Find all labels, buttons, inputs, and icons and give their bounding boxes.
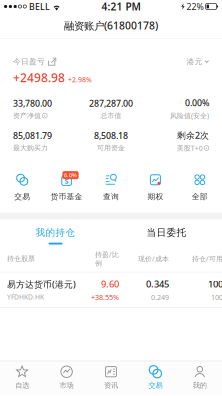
staticText: BELL xyxy=(29,0,50,12)
staticText: 33,780.00 xyxy=(13,97,52,109)
staticText: 持仓股票 xyxy=(7,254,35,263)
staticText: 8,508.18 xyxy=(94,130,128,142)
staticText: YFDHKD.HK xyxy=(7,292,44,301)
button[interactable]: 全部 xyxy=(178,174,222,201)
button[interactable]: 自选 xyxy=(0,365,44,390)
button[interactable]: 港元 xyxy=(187,55,209,68)
staticText: 剩余2次 xyxy=(177,129,209,141)
staticText: 0.00% xyxy=(185,97,209,109)
staticText: 交易 xyxy=(14,192,30,201)
staticText: 货币基金 xyxy=(51,192,83,201)
staticText: 资产净值 xyxy=(13,111,41,120)
staticText: 风险值(安全) xyxy=(170,111,209,120)
staticText: 资讯 xyxy=(104,381,118,390)
button[interactable]: 期权 xyxy=(133,174,178,201)
staticText: 85,081.79 xyxy=(13,130,52,142)
staticText: 全部 xyxy=(192,192,208,201)
staticText: 融资账户(61800178) xyxy=(64,18,158,33)
button[interactable]: 交易 xyxy=(0,174,44,201)
staticText: 现价/成本 xyxy=(138,254,169,263)
staticText: 我的持仓 xyxy=(35,226,75,239)
staticText: 港元 xyxy=(187,57,203,66)
staticText: 22% xyxy=(187,0,204,12)
staticText: 最大购买力 xyxy=(13,144,48,152)
staticText: +2.98% xyxy=(68,75,92,84)
button[interactable]: 资讯 xyxy=(89,365,133,390)
staticText: 我的 xyxy=(193,381,207,390)
button[interactable]: S xyxy=(44,174,89,201)
staticText: S xyxy=(65,176,69,186)
staticText: 0.249 xyxy=(151,292,169,302)
button[interactable]: 易方达货币(港元) xyxy=(0,273,222,307)
button[interactable]: 我的持仓 xyxy=(0,219,111,250)
staticText: 4:21 PM xyxy=(101,0,140,13)
staticText: 100 xyxy=(208,278,222,290)
staticText: 6.0% xyxy=(64,171,77,179)
staticText: 期权 xyxy=(147,192,163,201)
staticText: 今日盈亏 xyxy=(13,57,45,66)
button[interactable]: 市场 xyxy=(44,365,89,390)
staticText: 287,287.00 xyxy=(89,97,133,109)
staticText: 9.60 xyxy=(101,278,119,290)
staticText: 可用资金 xyxy=(97,144,125,152)
staticText: 美股T+0 xyxy=(177,143,203,153)
staticText: 总市值 xyxy=(100,111,121,120)
staticText: 100 xyxy=(211,292,222,302)
staticText: 查询 xyxy=(103,192,119,201)
staticText: 市场 xyxy=(60,381,74,390)
button[interactable]: 分享 xyxy=(45,57,58,67)
staticText: 当日委托 xyxy=(146,226,186,239)
staticText: +2498.98 xyxy=(13,69,65,86)
staticText: 0.345 xyxy=(146,278,169,290)
button[interactable]: 查询 xyxy=(89,174,133,201)
button[interactable]: 当日委托 xyxy=(111,219,222,250)
staticText: 持仓/可用 xyxy=(192,254,222,263)
staticText: 持盈/比例 xyxy=(95,250,119,268)
staticText: +38.55% xyxy=(91,292,119,302)
button[interactable]: 交易 xyxy=(133,365,178,390)
staticText: 自选 xyxy=(15,381,29,390)
staticText: 交易 xyxy=(148,381,162,390)
staticText: 易方达货币(港元) xyxy=(7,278,76,290)
button[interactable]: 我的 xyxy=(178,365,222,390)
